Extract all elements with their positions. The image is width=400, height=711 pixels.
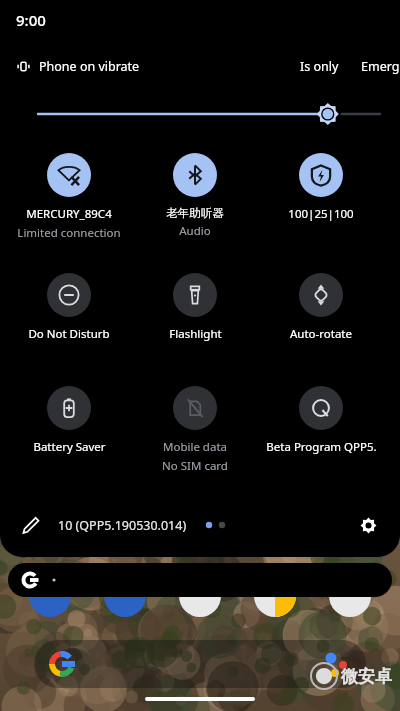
staticText: Battery Saver <box>33 439 106 455</box>
button[interactable]: Brightness <box>20 103 380 125</box>
staticText: MERCURY_89C4 <box>26 206 112 222</box>
staticText: Do Not Disturb <box>28 326 110 342</box>
staticText: 老年助听器 <box>166 206 224 220</box>
button[interactable]: Mobile data <box>132 384 258 474</box>
staticText: Phone on vibrate <box>39 58 140 75</box>
staticText: Limited connection <box>17 225 121 241</box>
staticText: No SIM card <box>162 458 228 474</box>
button[interactable]: Search <box>8 563 392 597</box>
staticText: Beta Program QPP5. <box>266 439 377 455</box>
staticText: 10 (QPP5.190530.014) <box>58 517 187 534</box>
button[interactable]: Battery status <box>258 151 384 222</box>
staticText: Audio <box>179 223 211 239</box>
staticText: Flashlight <box>169 326 222 342</box>
button[interactable]: Wi-Fi <box>6 151 132 241</box>
button[interactable]: Google search <box>34 640 366 688</box>
staticText: 微安卓 <box>341 666 392 687</box>
button[interactable]: Battery Saver <box>6 384 132 455</box>
staticText: Mobile data <box>163 439 227 455</box>
button[interactable]: Emerg <box>361 58 400 75</box>
button[interactable]: Settings <box>352 509 384 541</box>
staticText: Auto-rotate <box>290 326 352 342</box>
staticText: 100|25|100 <box>288 206 354 222</box>
button[interactable]: Auto-rotate <box>258 271 384 342</box>
button[interactable]: Bluetooth <box>132 151 258 239</box>
staticText: 9:00 <box>16 10 46 30</box>
button[interactable]: Flashlight <box>132 271 258 342</box>
button[interactable]: Do Not Disturb <box>6 271 132 342</box>
button[interactable]: Edit tiles <box>16 510 46 540</box>
button[interactable]: Phone on vibrate <box>12 54 144 79</box>
button[interactable]: Is only <box>294 52 345 81</box>
button[interactable]: Beta Program <box>258 384 384 455</box>
